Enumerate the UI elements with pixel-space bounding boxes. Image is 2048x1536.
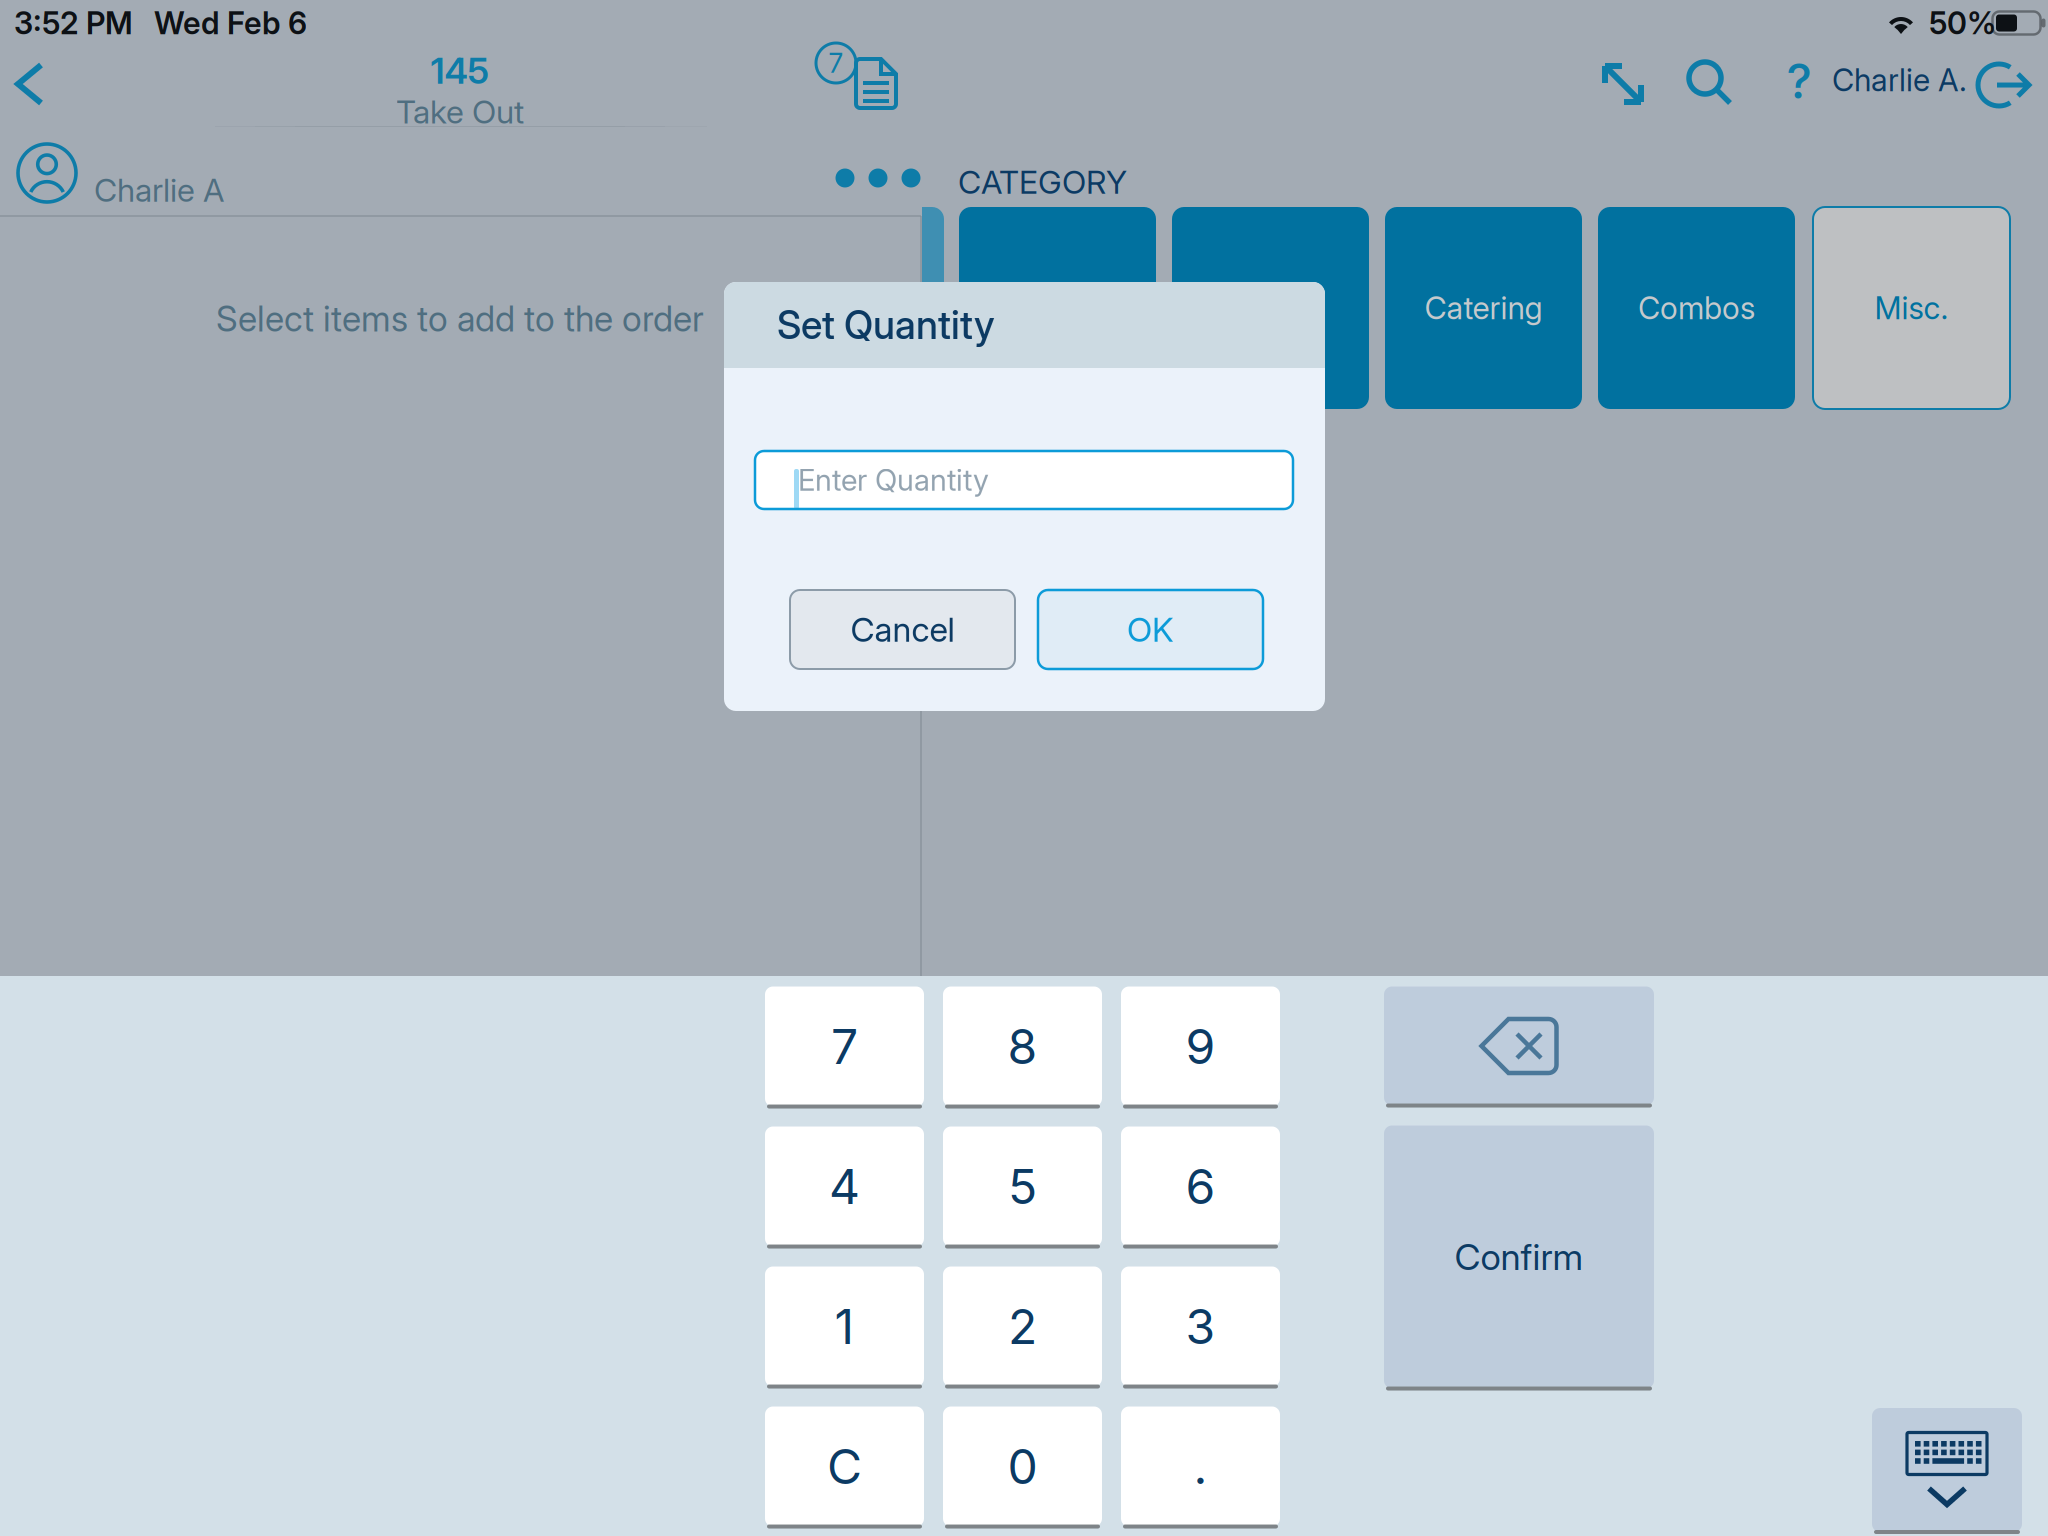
button[interactable]: 3 [1121,1266,1280,1386]
staticText: 3 [1185,1297,1215,1356]
staticText: Catering [1424,289,1542,326]
staticText: Charlie A. [1832,61,1967,98]
staticText: Combos [1638,289,1755,326]
staticText: 6 [1185,1157,1215,1216]
button[interactable]: 6 [1121,1126,1280,1246]
button[interactable]: Back [0,48,72,120]
button[interactable]: Search [1678,52,1744,116]
button[interactable]: 0 [943,1406,1102,1526]
staticText: 50% [1929,4,1996,41]
button[interactable] [959,207,1156,409]
staticText: 1 [834,1297,854,1356]
staticText: 145 [430,49,489,92]
button[interactable]: Charlie A. [1832,61,2048,98]
button[interactable]: Catering [1385,207,1582,409]
staticText: Set Quantity [777,302,995,348]
button[interactable]: 8 [943,986,1102,1106]
button[interactable]: Help [1786,52,1811,110]
button[interactable]: 5 [943,1126,1102,1246]
button[interactable]: Cancel [790,590,1015,669]
button[interactable]: C [765,1406,924,1526]
staticText: 7 [831,1017,858,1076]
staticText: 3:52 PM Wed Feb 6 [14,4,307,41]
button[interactable] [1172,207,1369,409]
staticText: C [827,1437,862,1496]
button[interactable]: Misc. [1813,207,2010,409]
button[interactable]: 1 [765,1266,924,1386]
staticText: OK [1127,609,1174,650]
staticText: 9 [1185,1017,1215,1076]
staticText: Take Out [396,92,524,131]
staticText: Cancel [850,609,954,650]
staticText: 0 [1007,1437,1037,1496]
button[interactable]: OK [1038,590,1263,669]
staticText: 2 [1008,1297,1037,1356]
button[interactable]: 4 [765,1126,924,1246]
button[interactable]: Order receipt [810,40,910,120]
button[interactable]: Hide keyboard [1872,1408,2022,1532]
staticText: Misc. [1874,289,1948,326]
button[interactable]: Combos [1598,207,1795,409]
button[interactable]: . [1121,1406,1280,1526]
button[interactable]: Sign out [1974,58,2038,112]
staticText: Confirm [1454,1235,1583,1279]
staticText: Select items to add to the order [216,298,704,340]
staticText: 8 [1007,1017,1037,1076]
staticText: Charlie A [94,171,224,209]
staticText: CATEGORY [958,163,1127,201]
button[interactable]: More options [835,168,920,187]
staticText: 7 [828,47,843,79]
button[interactable]: 7 [765,986,924,1106]
button[interactable]: 9 [1121,986,1280,1106]
staticText: 4 [829,1157,860,1216]
button[interactable]: Delete [1384,986,1654,1105]
staticText: . [1193,1437,1207,1496]
staticText: ? [1786,52,1811,110]
staticText: 5 [1008,1157,1037,1216]
button[interactable]: Confirm [1384,1125,1654,1388]
staticText: Enter Quantity [798,462,989,498]
button[interactable]: 2 [943,1266,1102,1386]
button[interactable]: Expand [1592,54,1654,114]
